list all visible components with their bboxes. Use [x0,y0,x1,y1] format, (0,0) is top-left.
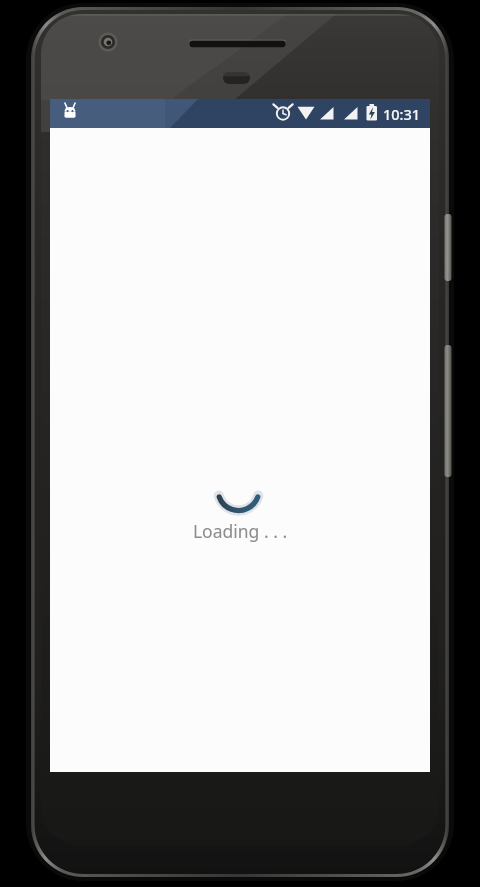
staticText: 10:31 [383,104,421,124]
button[interactable]: Clock 10:31 [383,104,431,124]
staticText: Loading . . . [50,519,430,543]
